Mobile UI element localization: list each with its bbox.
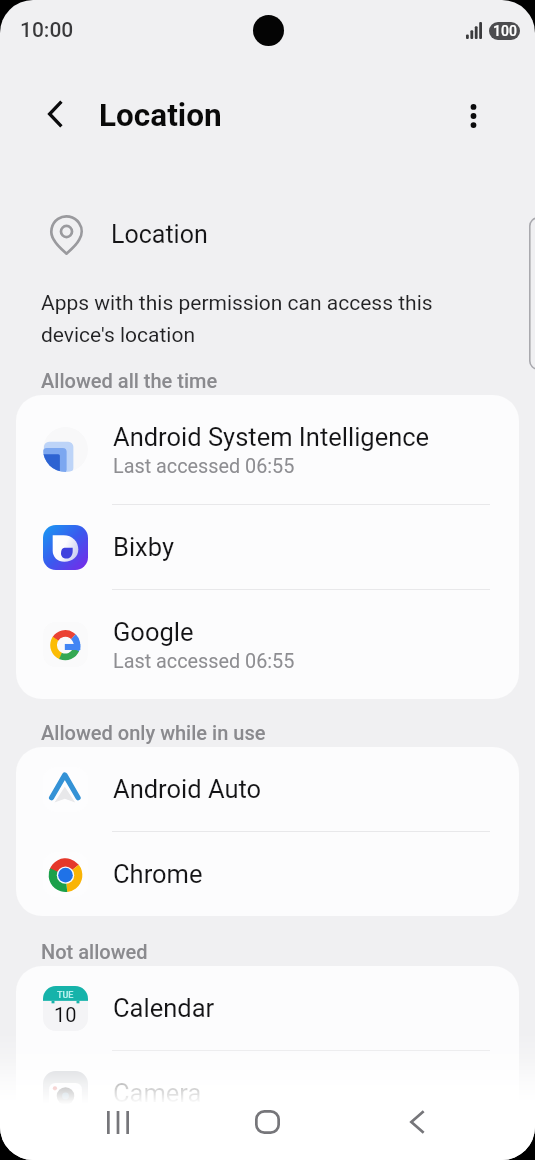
staticText: Not allowed [41,940,148,963]
staticText: Android System Intelligence [113,422,430,452]
staticText: Chrome [113,859,203,889]
button[interactable]: Chrome [16,832,519,916]
staticText: Location [99,97,222,134]
button[interactable]: Back [377,1088,458,1156]
staticText: Location [111,220,208,249]
staticText: Camera [113,1078,202,1108]
staticText: Last accessed 06:55 [113,455,295,478]
staticText: Allowed all the time [41,369,218,392]
staticText: Android Auto [113,774,262,804]
staticText: Allowed only while in use [41,721,266,744]
button[interactable]: Camera [16,1051,519,1135]
button[interactable]: Navigate up [31,90,79,138]
staticText: Last accessed 06:55 [113,650,295,673]
button[interactable]: Bixby [16,505,519,589]
staticText: 10 [54,1003,77,1026]
staticText: TUE [57,990,74,1001]
button[interactable]: Android Auto [16,747,519,831]
staticText: Google [113,617,194,647]
button[interactable]: Google [16,590,519,699]
staticText: Bixby [113,532,174,562]
staticText: 10:00 [20,18,74,43]
button[interactable]: Android System Intelligence [16,395,519,504]
staticText: Calendar [113,993,215,1023]
button[interactable]: More options [451,94,495,138]
button[interactable]: Home [227,1088,308,1156]
button[interactable]: Recent apps [77,1088,158,1156]
staticText: 100 [493,23,517,39]
button[interactable]: TUE [16,966,519,1050]
staticText: Apps with this permission can access thi… [41,291,471,347]
